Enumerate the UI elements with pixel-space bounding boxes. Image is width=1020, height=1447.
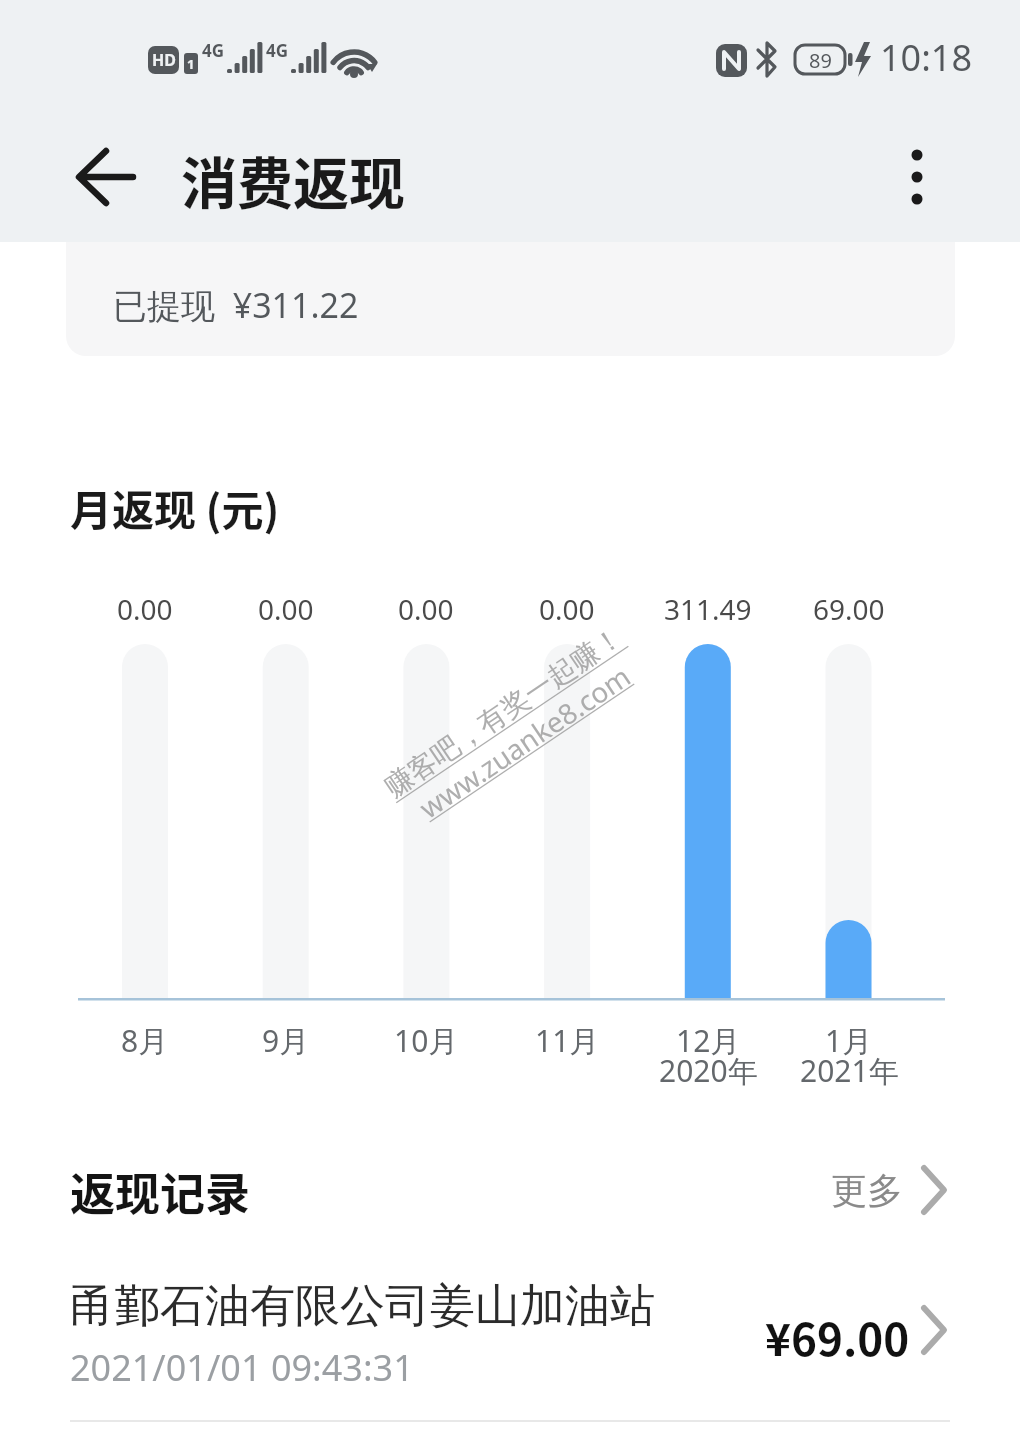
staticText: 0.00 [117, 590, 173, 628]
staticText: 返现记录 [70, 1159, 251, 1221]
staticText: 4G [266, 39, 289, 62]
staticText: www.zuanke8.com [411, 657, 637, 826]
staticText: 赚客吧，有奖一起赚！ [378, 619, 629, 804]
staticText: 10月 [394, 1020, 459, 1061]
staticText: 1月 [825, 1020, 873, 1061]
button[interactable]: 已提现 ¥311.22 [66, 242, 955, 356]
staticText: 10:18 [880, 33, 973, 82]
staticText: 0.00 [539, 590, 595, 628]
button[interactable]: 更多 [820, 1158, 960, 1222]
staticText: 0.00 [398, 590, 454, 628]
button[interactable] [60, 145, 150, 211]
staticText: ¥69.00 [765, 1305, 910, 1365]
staticText: 已提现 ¥311.22 [113, 282, 359, 328]
staticText: 0.00 [258, 590, 314, 628]
staticText: 消费返现 [181, 139, 405, 215]
staticText: 甬鄞石油有限公司姜山加油站 [70, 1278, 655, 1335]
button[interactable] [885, 145, 951, 211]
staticText: 89 [809, 47, 832, 73]
staticText: 311.49 [664, 590, 752, 628]
staticText: 8月 [121, 1020, 169, 1061]
staticText: 9月 [262, 1020, 310, 1061]
staticText: 69.00 [813, 590, 885, 628]
staticText: 2021年 [800, 1050, 899, 1091]
staticText: HD [152, 49, 176, 71]
staticText: 2021/01/01 09:43:31 [70, 1343, 414, 1392]
button[interactable] [0, 1250, 1020, 1420]
staticText: 12月 [676, 1020, 741, 1061]
staticText: 更多 [831, 1168, 903, 1213]
staticText: 2020年 [659, 1050, 758, 1091]
staticText: 1 [187, 55, 195, 73]
staticText: 11月 [535, 1020, 600, 1061]
staticText: 4G [202, 39, 225, 62]
staticText: 月返现 (元) [70, 477, 280, 538]
